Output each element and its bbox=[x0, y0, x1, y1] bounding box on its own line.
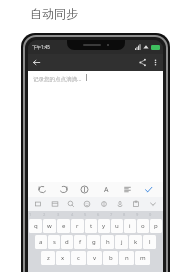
button[interactable]: More options bbox=[150, 57, 161, 68]
staticText: l bbox=[149, 238, 151, 246]
staticText: n bbox=[125, 254, 129, 262]
button[interactable]: k bbox=[129, 235, 142, 249]
button[interactable]: 记录您的点点滴滴... bbox=[28, 71, 163, 182]
button[interactable]: e bbox=[57, 219, 70, 233]
button[interactable]: Redo bbox=[57, 183, 70, 196]
button[interactable]: Clipboard bbox=[130, 198, 142, 210]
button[interactable]: h bbox=[101, 235, 114, 249]
button[interactable]: j bbox=[115, 235, 128, 249]
staticText: f bbox=[79, 238, 82, 246]
staticText: a bbox=[39, 238, 43, 246]
staticText: k bbox=[134, 238, 138, 246]
button[interactable]: l bbox=[143, 235, 156, 249]
button[interactable]: Undo bbox=[36, 183, 49, 196]
staticText: i bbox=[129, 222, 131, 230]
button[interactable]: s bbox=[48, 235, 60, 249]
staticText: r bbox=[76, 222, 79, 230]
button[interactable]: Back bbox=[31, 57, 42, 68]
staticText: j bbox=[121, 238, 123, 246]
button[interactable]: y bbox=[98, 219, 110, 233]
button[interactable]: Insert bbox=[78, 183, 91, 196]
button[interactable]: b bbox=[103, 251, 118, 265]
staticText: h bbox=[106, 238, 110, 246]
button[interactable]: c bbox=[71, 251, 86, 265]
staticText: u bbox=[115, 222, 119, 230]
staticText: s bbox=[53, 238, 56, 246]
staticText: x bbox=[61, 254, 65, 262]
staticText: o bbox=[141, 222, 145, 230]
staticText: 8 bbox=[123, 212, 136, 217]
staticText: 9 bbox=[136, 212, 149, 217]
staticText: 5 bbox=[84, 212, 97, 217]
staticText: p bbox=[154, 222, 158, 230]
button[interactable]: v bbox=[87, 251, 102, 265]
staticText: 下午1:45 bbox=[32, 44, 50, 50]
staticText: c bbox=[77, 254, 80, 262]
button[interactable]: o bbox=[137, 219, 149, 233]
staticText: w bbox=[47, 222, 52, 230]
staticText: z bbox=[47, 254, 50, 262]
staticText: q bbox=[34, 222, 38, 230]
button[interactable]: p bbox=[150, 219, 162, 233]
staticText: A bbox=[104, 185, 109, 195]
button[interactable]: i bbox=[124, 219, 136, 233]
staticText: 2 bbox=[43, 212, 57, 217]
button[interactable]: Share bbox=[137, 57, 148, 68]
staticText: m bbox=[140, 254, 146, 262]
button[interactable]: n bbox=[119, 251, 134, 265]
button[interactable]: t bbox=[85, 219, 97, 233]
button[interactable]: u bbox=[111, 219, 123, 233]
button[interactable]: f bbox=[74, 235, 86, 249]
button[interactable]: g bbox=[87, 235, 100, 249]
staticText: t bbox=[90, 222, 93, 230]
button[interactable]: Emoji bbox=[81, 198, 93, 210]
button[interactable]: Themes bbox=[49, 198, 61, 210]
button[interactable]: r bbox=[71, 219, 84, 233]
staticText: 记录您的点点滴滴... bbox=[33, 75, 82, 83]
button[interactable]: Font bbox=[100, 183, 113, 196]
staticText: 自动同步 bbox=[30, 6, 78, 21]
button[interactable]: a bbox=[35, 235, 47, 249]
button[interactable]: z bbox=[41, 251, 55, 265]
button[interactable]: q bbox=[29, 219, 42, 233]
button[interactable]: m bbox=[135, 251, 150, 265]
button[interactable]: Keyboard layout bbox=[32, 198, 44, 210]
button[interactable]: Collapse keyboard bbox=[147, 198, 159, 210]
button[interactable]: x bbox=[56, 251, 70, 265]
button[interactable]: Done bbox=[142, 183, 155, 196]
staticText: 3 bbox=[57, 212, 71, 217]
button[interactable]: d bbox=[61, 235, 73, 249]
staticText: d bbox=[65, 238, 69, 246]
button[interactable]: Search bbox=[65, 198, 77, 210]
staticText: 4 bbox=[71, 212, 84, 217]
button[interactable]: Sticker bbox=[98, 198, 110, 210]
staticText: 0 bbox=[149, 212, 162, 217]
staticText: b bbox=[109, 254, 113, 262]
staticText: 7 bbox=[110, 212, 123, 217]
button[interactable]: Voice input bbox=[114, 198, 126, 210]
staticText: g bbox=[92, 238, 96, 246]
staticText: 6 bbox=[97, 212, 110, 217]
staticText: e bbox=[62, 222, 66, 230]
button[interactable]: Align bbox=[121, 183, 134, 196]
staticText: y bbox=[102, 222, 106, 230]
staticText: v bbox=[93, 254, 97, 262]
button[interactable]: w bbox=[43, 219, 56, 233]
